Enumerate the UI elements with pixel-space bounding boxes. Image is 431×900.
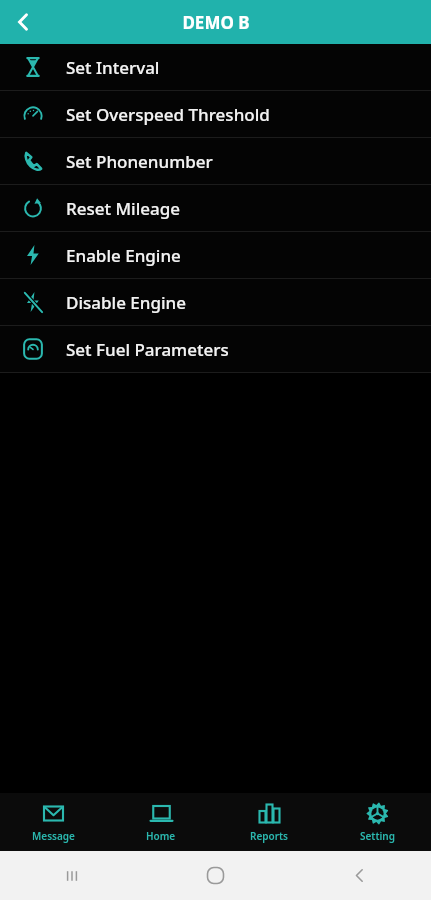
staticText: Home [146,829,176,843]
staticText: Set Phonenumber [66,150,213,173]
button[interactable]: Set Interval [0,44,431,90]
button[interactable]: Message [0,793,107,851]
staticText: Disable Engine [66,291,186,314]
button[interactable]: Home [107,793,215,851]
button[interactable]: Set Fuel Parameters [0,326,431,372]
button[interactable]: Reset Mileage [0,185,431,231]
button[interactable]: Setting [323,793,431,851]
staticText: Reports [250,829,289,843]
staticText: Set Fuel Parameters [66,338,229,361]
staticText: Message [32,829,75,843]
button[interactable]: Back [0,0,46,44]
staticText: Enable Engine [66,244,181,267]
button[interactable]: Set Overspeed Threshold [0,91,431,137]
button[interactable]: Set Phonenumber [0,138,431,184]
staticText: Setting [360,829,395,843]
button[interactable]: Disable Engine [0,279,431,325]
staticText: DEMO B [182,11,250,34]
staticText: Set Interval [66,56,160,79]
staticText: Set Overspeed Threshold [66,103,270,126]
staticText: Reset Mileage [66,197,181,220]
button[interactable]: Reports [215,793,323,851]
button[interactable]: Enable Engine [0,232,431,278]
